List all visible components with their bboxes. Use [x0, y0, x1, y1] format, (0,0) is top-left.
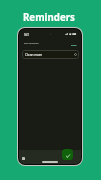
button[interactable]: Clean room [22, 50, 79, 59]
staticText: Save [71, 43, 77, 46]
button[interactable]: Save [70, 42, 78, 47]
staticText: Reminders [23, 11, 75, 24]
button[interactable]: Save reminder [62, 149, 73, 160]
staticText: Edit Reminder [24, 42, 39, 45]
button[interactable]: Delete reminder [22, 157, 25, 160]
staticText: Clean room [25, 53, 43, 57]
staticText: 9:41 [24, 33, 29, 36]
button[interactable]: Clear text [74, 53, 77, 56]
